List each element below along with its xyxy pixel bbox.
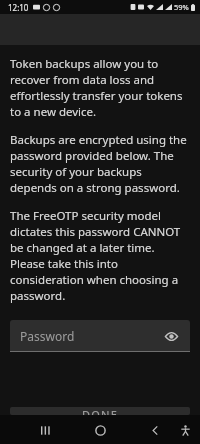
staticText: DONE xyxy=(82,407,119,415)
button[interactable]: Recent apps xyxy=(32,416,60,444)
staticText: Backups are encrypted using the password… xyxy=(10,132,190,196)
staticText: Password xyxy=(20,328,75,344)
staticText: 59% xyxy=(174,2,189,12)
button[interactable]: Show password xyxy=(161,326,181,346)
button[interactable]: Password xyxy=(10,320,190,352)
button[interactable]: DONE xyxy=(10,407,190,415)
button[interactable]: Home xyxy=(86,416,114,444)
button[interactable]: Back xyxy=(141,416,169,444)
button[interactable]: Accessibility xyxy=(171,416,199,444)
staticText: 12:10 xyxy=(8,2,29,13)
staticText: The FreeOTP security model dictates this… xyxy=(10,208,190,304)
staticText: Token backups allow you to recover from … xyxy=(10,56,190,120)
